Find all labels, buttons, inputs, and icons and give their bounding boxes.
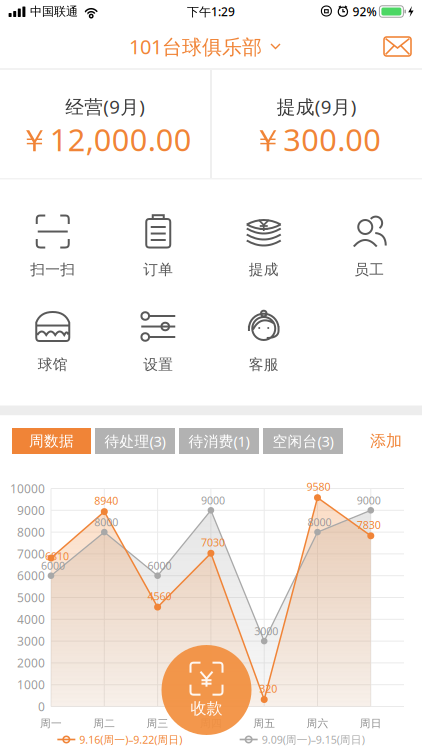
staticText: 球馆 — [38, 355, 68, 373]
button[interactable]: 设置 — [105, 308, 211, 373]
staticText: 设置 — [143, 355, 173, 373]
staticText: 6000 — [41, 559, 65, 573]
staticText: 6000 — [17, 568, 45, 584]
button[interactable]: Messages — [370, 27, 422, 66]
staticText: 2000 — [17, 655, 45, 671]
staticText: 周一 — [40, 717, 62, 730]
staticText: 周五 — [253, 717, 275, 730]
staticText: 客服 — [249, 355, 279, 373]
staticText: 8000 — [17, 524, 45, 540]
button[interactable]: 待处理(3) — [95, 428, 175, 454]
staticText: 5000 — [17, 589, 45, 605]
staticText: 92% — [352, 3, 376, 19]
staticText: 周数据 — [29, 432, 74, 450]
staticText: 待消费(1) — [188, 431, 249, 451]
staticText: 周六 — [306, 717, 328, 730]
staticText: 9580 — [306, 480, 330, 494]
staticText: 8000 — [94, 515, 118, 529]
staticText: 待处理(3) — [104, 431, 165, 451]
staticText: 9000 — [17, 502, 45, 518]
staticText: 7030 — [201, 535, 225, 549]
staticText: 101台球俱乐部 — [129, 33, 262, 60]
staticText: 周二 — [93, 717, 115, 730]
staticText: 9.09(周一)–9.15(周日) — [262, 732, 365, 747]
staticText: 7830 — [357, 518, 381, 532]
staticText: 下午1:29 — [187, 3, 235, 19]
staticText: 扫一扫 — [30, 260, 75, 278]
button[interactable]: 员工 — [316, 213, 422, 278]
staticText: 提成 — [249, 260, 279, 278]
staticText: 6000 — [148, 559, 172, 573]
staticText: 7000 — [17, 546, 45, 562]
staticText: 10000 — [10, 480, 45, 496]
staticText: 添加 — [370, 431, 402, 451]
staticText: ￥300.00 — [252, 119, 381, 160]
staticText: 经营(9月) — [65, 94, 145, 119]
staticText: 收款 — [190, 699, 222, 718]
staticText: 4000 — [17, 611, 45, 627]
staticText: 空闲台(3) — [272, 431, 333, 451]
staticText: 中国联通 — [30, 4, 78, 19]
staticText: 1000 — [17, 677, 45, 693]
button[interactable]: 待消费(1) — [179, 428, 259, 454]
staticText: 4560 — [148, 589, 172, 603]
button[interactable]: 添加 — [362, 424, 410, 458]
staticText: 周三 — [147, 717, 169, 730]
button[interactable]: 扫一扫 — [0, 213, 105, 278]
staticText: 0 — [38, 698, 45, 714]
staticText: 3000 — [17, 633, 45, 649]
staticText: 8940 — [94, 493, 118, 508]
staticText: 提成(9月) — [277, 94, 357, 119]
staticText: 周日 — [360, 717, 382, 730]
button[interactable]: 客服 — [211, 308, 316, 373]
staticText: 6810 — [45, 549, 69, 563]
staticText: 9.16(周一)–9.22(周日) — [79, 732, 182, 747]
button[interactable]: 球馆 — [0, 308, 105, 373]
staticText: 9000 — [201, 493, 225, 507]
staticText: ￥12,000.00 — [19, 119, 192, 160]
staticText: 8000 — [307, 515, 331, 529]
button[interactable]: 空闲台(3) — [263, 428, 343, 454]
button[interactable]: 订单 — [105, 213, 211, 278]
button[interactable]: 提成 — [211, 213, 316, 278]
button[interactable]: 101台球俱乐部 — [115, 25, 295, 68]
staticText: 3000 — [254, 624, 278, 638]
staticText: 320 — [259, 681, 277, 696]
button[interactable]: 收款 — [161, 645, 251, 735]
staticText: 员工 — [354, 260, 384, 278]
staticText: 订单 — [143, 260, 173, 278]
staticText: 9000 — [357, 493, 381, 507]
button[interactable]: 周数据 — [12, 428, 91, 454]
